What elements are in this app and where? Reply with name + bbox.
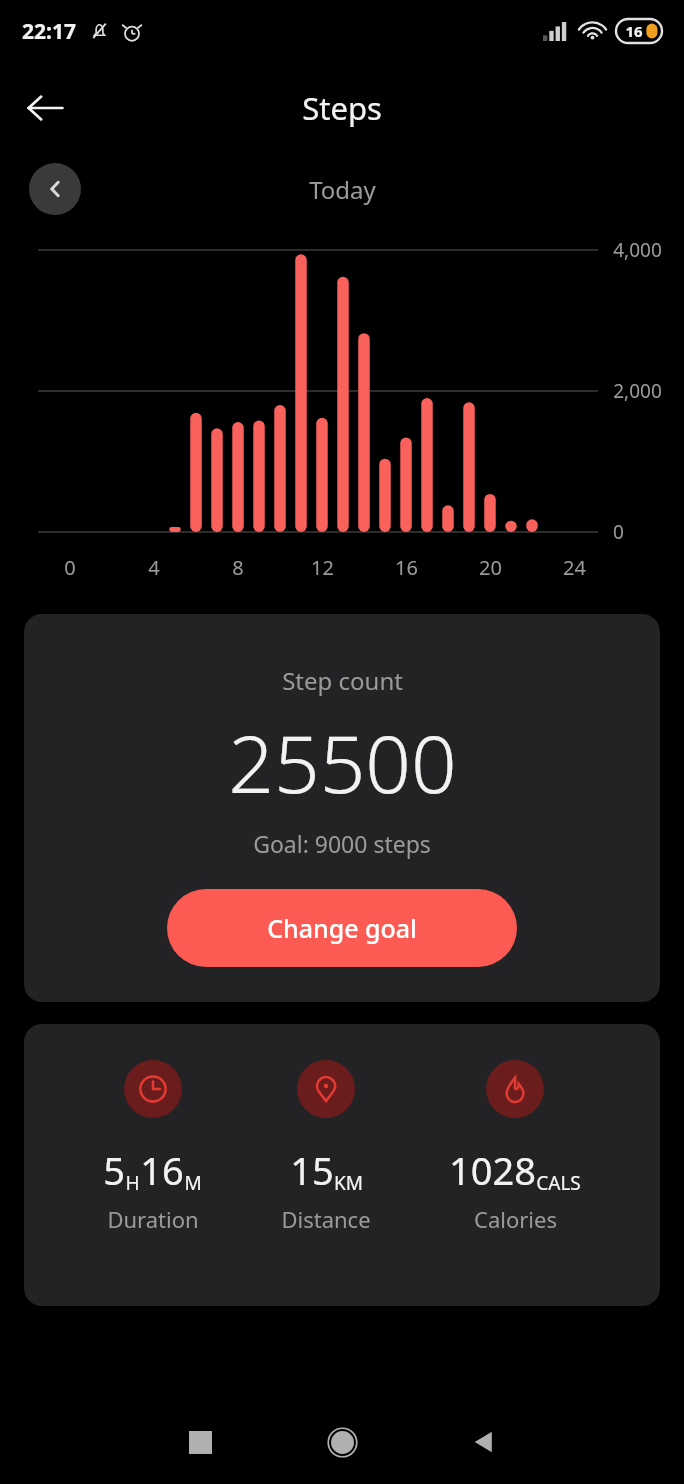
- staticText: 8: [232, 554, 244, 581]
- staticText: 16: [140, 1144, 184, 1196]
- staticText: Steps: [302, 87, 382, 129]
- staticText: 15: [290, 1144, 334, 1196]
- staticText: Duration: [107, 1204, 199, 1234]
- button[interactable]: Back: [455, 1414, 511, 1470]
- button[interactable]: Recent apps: [172, 1414, 228, 1470]
- staticText: 16: [395, 554, 418, 581]
- staticText: 25500: [228, 707, 457, 816]
- staticText: 0: [64, 554, 76, 581]
- button[interactable]: Step count: [24, 614, 660, 1002]
- staticText: Step count: [282, 664, 403, 697]
- staticText: CALS: [536, 1170, 581, 1196]
- staticText: Today: [309, 173, 376, 206]
- staticText: Change goal: [267, 911, 417, 945]
- staticText: 5: [103, 1144, 125, 1196]
- staticText: 0: [613, 519, 624, 545]
- staticText: M: [184, 1170, 202, 1196]
- staticText: 4,000: [613, 237, 662, 263]
- staticText: 20: [479, 554, 502, 581]
- staticText: 24: [563, 554, 586, 581]
- button[interactable]: Change goal: [167, 889, 517, 967]
- staticText: H: [125, 1170, 140, 1196]
- staticText: Distance: [281, 1204, 371, 1234]
- staticText: 22:17: [22, 17, 76, 46]
- button[interactable]: 5: [24, 1024, 660, 1306]
- staticText: Goal: 9000 steps: [253, 828, 431, 859]
- staticText: 1028: [449, 1144, 536, 1196]
- staticText: 2,000: [613, 378, 662, 404]
- staticText: 4: [148, 554, 160, 581]
- button[interactable]: Home: [314, 1414, 370, 1470]
- button[interactable]: Previous day: [29, 163, 81, 215]
- staticText: 16: [625, 21, 643, 41]
- button[interactable]: Back: [16, 79, 74, 137]
- staticText: KM: [334, 1170, 363, 1196]
- staticText: 12: [311, 554, 334, 581]
- staticText: Calories: [474, 1204, 557, 1234]
